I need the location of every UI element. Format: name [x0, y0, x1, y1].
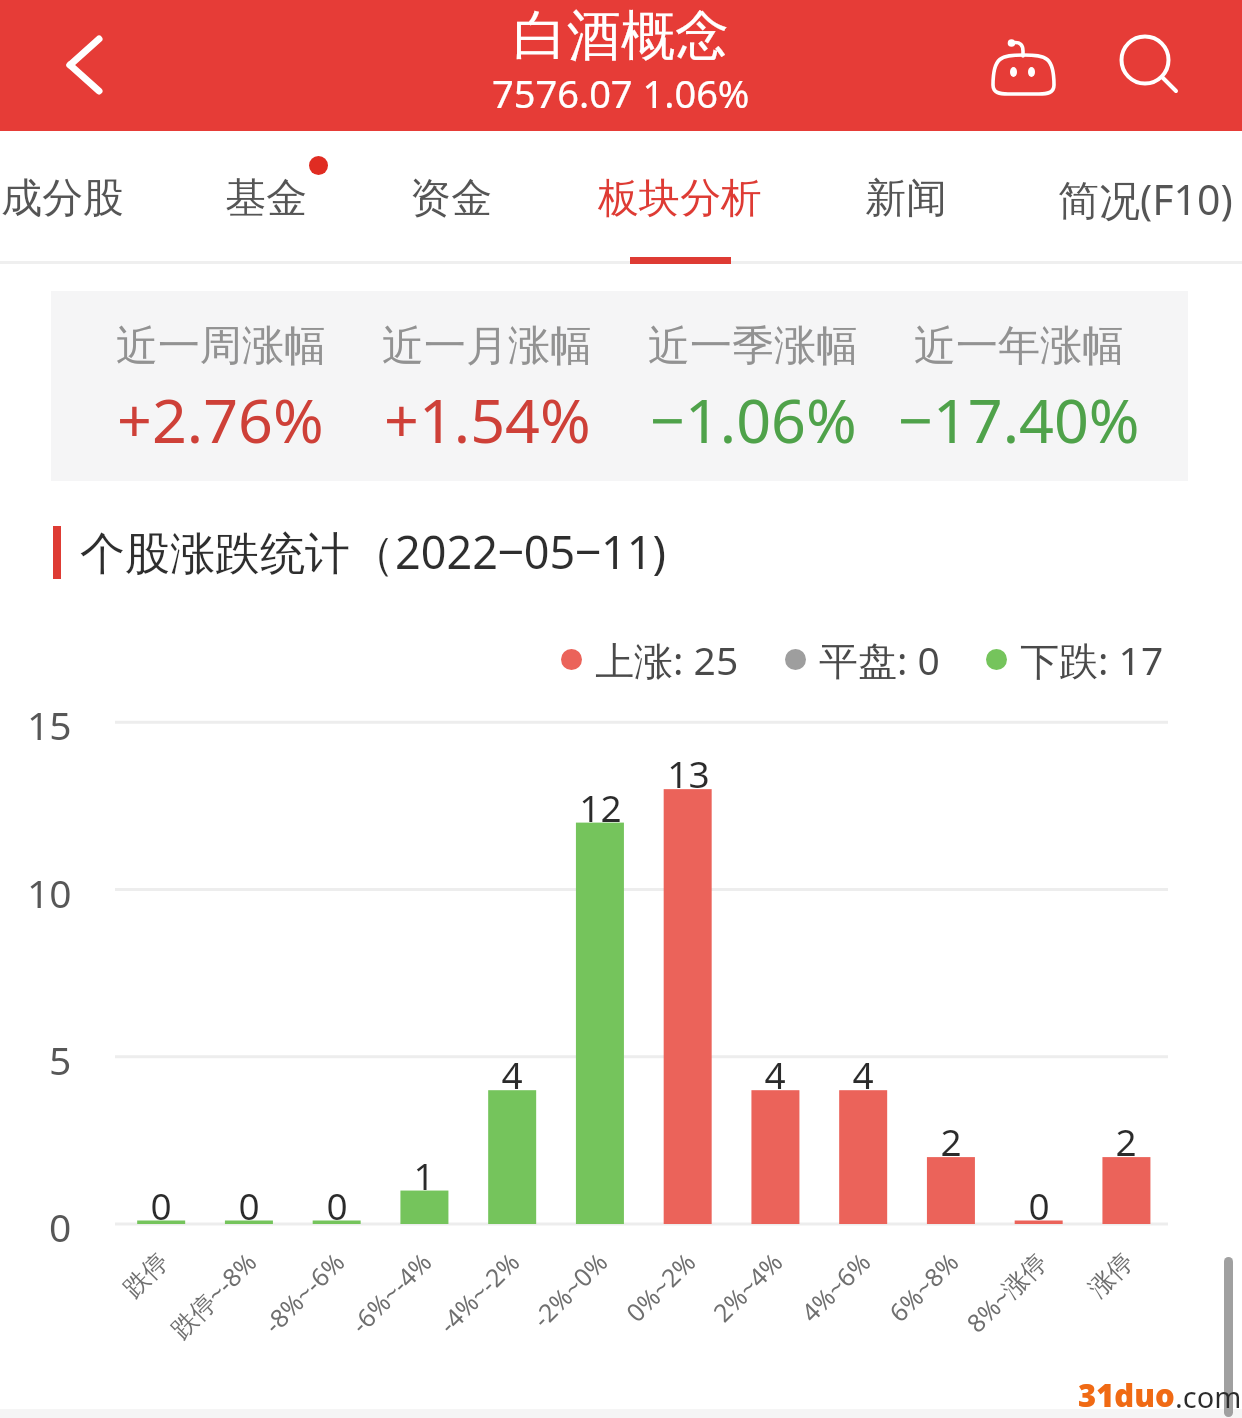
button[interactable]: −17.40% [886, 378, 1152, 448]
button[interactable]: +2.76% [87, 378, 354, 448]
staticText: 10 [27, 866, 72, 914]
staticText: 0 [49, 1200, 72, 1248]
staticText: 近一年涨幅 [914, 320, 1124, 373]
button[interactable]: 下跌: 17 [986, 633, 1164, 686]
staticText: 4 [852, 1049, 874, 1089]
staticText: 平盘: 0 [819, 633, 940, 686]
staticText: 15 [27, 698, 72, 746]
staticText: 上涨: 25 [595, 633, 739, 686]
button[interactable]: −1.06% [620, 378, 886, 448]
staticText: 2 [940, 1116, 962, 1156]
button[interactable]: 上涨: 25 [561, 633, 739, 686]
staticText: -6%~-4% [343, 1245, 438, 1340]
staticText: 0 [150, 1180, 172, 1220]
button[interactable]: 板块分析 [546, 131, 814, 262]
staticText: 板块分析 [598, 173, 762, 225]
staticText: 0 [1028, 1180, 1050, 1220]
staticText: 1 [413, 1150, 435, 1190]
button[interactable]: 资金 [359, 131, 543, 262]
staticText: −17.40% [898, 378, 1140, 448]
staticText: 跌停~-8% [163, 1245, 263, 1345]
staticText: +2.76% [117, 378, 324, 448]
staticText: 6%~8% [881, 1245, 965, 1329]
staticText: -2%~0% [524, 1245, 614, 1335]
staticText: −1.06% [650, 378, 857, 448]
staticText: 7576.07 1.06% [492, 67, 750, 119]
button[interactable]: 近一月涨幅 [354, 316, 620, 376]
staticText: 简况(F10) [1058, 171, 1233, 227]
staticText: 近一月涨幅 [382, 320, 592, 373]
staticText: 0 [238, 1180, 260, 1220]
staticText: 31duo [1078, 1374, 1175, 1416]
button[interactable]: 成分股 [0, 131, 175, 262]
staticText: 4 [501, 1049, 523, 1089]
staticText: 0%~2% [618, 1245, 702, 1329]
staticText: 资金 [410, 173, 492, 225]
staticText: 13 [667, 748, 710, 788]
staticText: +1.54% [384, 378, 591, 448]
button[interactable]: 基金 [174, 131, 358, 262]
staticText: -8%~-6% [256, 1245, 351, 1340]
staticText: 近一周涨幅 [116, 320, 326, 373]
staticText: 下跌: 17 [1020, 633, 1164, 686]
button[interactable]: 近一年涨幅 [886, 316, 1152, 376]
staticText: 基金 [225, 173, 307, 225]
button[interactable]: 简况(F10) [1002, 131, 1242, 262]
staticText: 近一季涨幅 [648, 320, 858, 373]
button[interactable]: Back [32, 15, 133, 116]
staticText: 成分股 [1, 173, 124, 225]
staticText: 4 [764, 1049, 786, 1089]
staticText: 2%~4% [705, 1245, 789, 1329]
button[interactable]: 平盘: 0 [785, 633, 940, 686]
button[interactable]: Assistant [967, 10, 1077, 120]
staticText: 0 [326, 1180, 348, 1220]
staticText: 5 [49, 1033, 72, 1081]
button[interactable]: 近一季涨幅 [620, 316, 886, 376]
staticText: 4%~6% [793, 1245, 877, 1329]
staticText: .com [1175, 1377, 1242, 1416]
button[interactable]: 新闻 [814, 131, 998, 262]
staticText: 个股涨跌统计（2022‒05‒11) [80, 521, 666, 582]
staticText: 新闻 [865, 173, 947, 225]
staticText: 涨停 [1082, 1246, 1139, 1304]
staticText: 12 [579, 782, 622, 822]
button[interactable]: 近一周涨幅 [87, 316, 354, 376]
staticText: 跌停 [117, 1246, 174, 1304]
staticText: 2 [1115, 1116, 1137, 1156]
staticText: -4%~-2% [431, 1245, 526, 1340]
button[interactable]: +1.54% [354, 378, 620, 448]
staticText: 8%~涨停 [958, 1245, 1053, 1340]
button[interactable]: Search [1098, 10, 1208, 120]
staticText: 白酒概念 [513, 2, 729, 70]
